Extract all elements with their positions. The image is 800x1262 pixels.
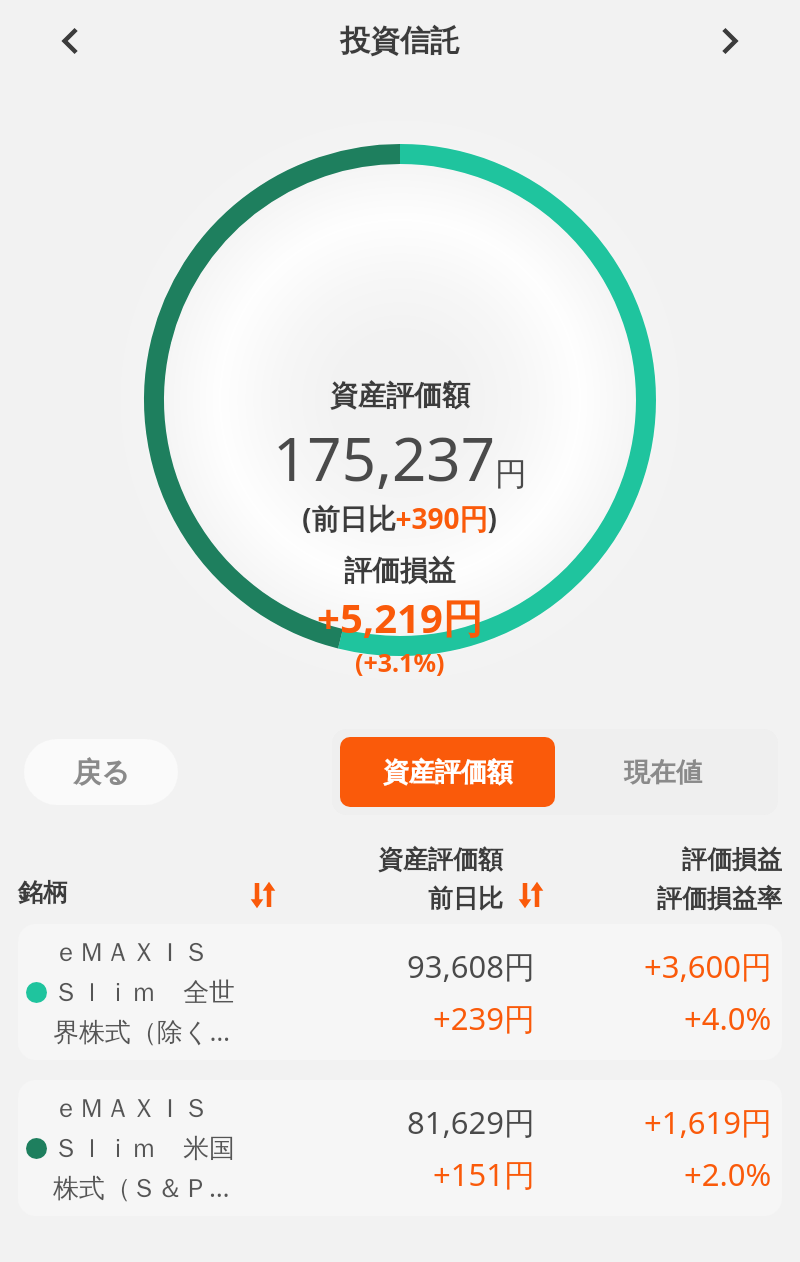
staticText: ｅＭＡＸＩＳ [53,936,209,969]
staticText: 銘柄 [18,877,245,908]
staticText: 資産評価額 [378,844,503,875]
staticText: 81,629円 [407,1101,535,1143]
staticText: +5,219円 [317,590,483,645]
staticText: 資産評価額 [383,756,513,789]
staticText: 資産評価額 [330,378,470,413]
staticText: Ｓｌｉｍ 米国 [53,1129,235,1165]
staticText: 戻る [73,755,130,790]
button[interactable]: ｅＭＡＸＩＳ [18,1080,782,1216]
staticText: +151円 [433,1153,535,1195]
button[interactable]: 現在値 [555,737,770,807]
button[interactable]: Previous [42,12,100,70]
staticText: Ｓｌｉｍ 全世 [53,973,235,1009]
staticText: +3,600円 [644,945,772,987]
staticText: 界株式（除く… [53,1013,231,1049]
button[interactable]: ｅＭＡＸＩＳ [18,924,782,1060]
staticText: 投資信託 [340,22,460,60]
staticText: 評価損益率 [657,883,782,914]
staticText: (前日比+390円) [302,499,498,537]
staticText: 評価損益 [682,844,782,875]
staticText: 評価損益 [344,553,456,588]
staticText: 93,608円 [407,945,535,987]
staticText: +2.0% [684,1153,772,1195]
staticText: 175,237 [273,417,495,499]
button[interactable]: Sort by profit [513,878,549,912]
button[interactable]: 資産評価額 [340,737,555,807]
staticText: +239円 [433,997,535,1039]
staticText: 前日比 [428,883,503,914]
button[interactable]: Next [700,12,758,70]
button[interactable]: Sort by valuation [245,878,281,912]
staticText: ｅＭＡＸＩＳ [53,1092,209,1125]
button[interactable]: 戻る [24,739,178,805]
staticText: +1,619円 [644,1101,772,1143]
staticText: 株式（Ｓ＆Ｐ… [53,1169,230,1205]
staticText: 円 [495,454,527,494]
staticText: +4.0% [684,997,772,1039]
staticText: 現在値 [624,756,702,789]
staticText: (+3.1%) [355,645,445,679]
